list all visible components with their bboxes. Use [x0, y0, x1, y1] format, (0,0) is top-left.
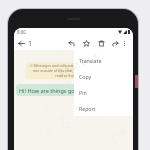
staticText: Copy	[79, 73, 92, 80]
button[interactable]: Forward	[109, 36, 121, 50]
button[interactable]: Star	[80, 36, 92, 50]
staticText: Translate	[79, 57, 102, 64]
button[interactable]: Report	[74, 100, 133, 116]
button[interactable]: Delete	[95, 36, 107, 50]
button[interactable]: Pin	[74, 84, 133, 100]
button[interactable]: Reply	[65, 36, 77, 50]
button[interactable]: Copy	[74, 68, 133, 84]
staticText: Report	[79, 105, 96, 112]
button[interactable]: More options	[118, 36, 130, 50]
staticText: ⚿ Messages and calls are end-to-end encr…	[30, 63, 118, 78]
staticText: Pin	[79, 89, 87, 96]
button[interactable]: Back	[16, 38, 27, 49]
staticText: SAMPLE	[55, 49, 103, 79]
staticText: 1	[28, 39, 33, 47]
staticText: 8:00	[17, 29, 26, 35]
button[interactable]: Translate	[74, 52, 133, 68]
staticText: Hi! How are things going?	[19, 87, 86, 94]
